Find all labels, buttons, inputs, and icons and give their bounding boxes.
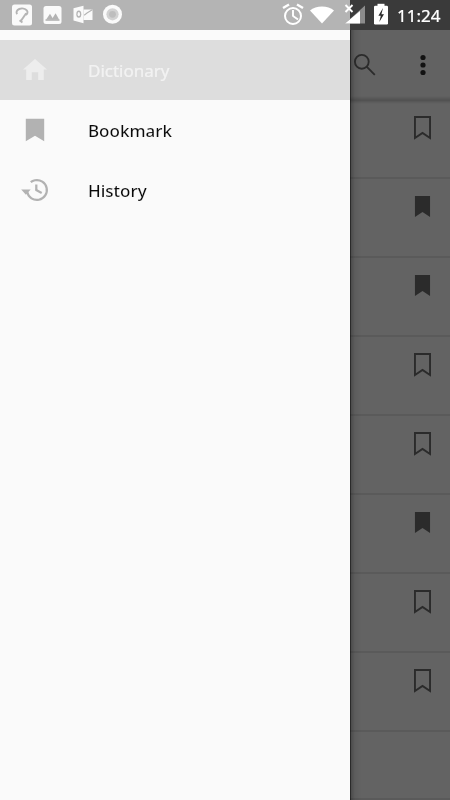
staticText: ability [20, 195, 70, 218]
button[interactable]: More options [399, 41, 447, 89]
button[interactable]: abolish [0, 337, 450, 416]
button[interactable]: absolute [0, 495, 450, 574]
button[interactable]: Bookmark [0, 100, 350, 160]
button[interactable]: ability [0, 179, 450, 258]
button[interactable]: abundant [0, 732, 450, 800]
button[interactable]: History [0, 160, 350, 220]
staticText: 11:24 [397, 4, 441, 27]
staticText: History [88, 179, 147, 202]
button[interactable]: abstract [0, 653, 450, 732]
button[interactable]: abnormal [0, 258, 450, 337]
button[interactable]: abandon [0, 100, 450, 179]
staticText: Bookmark [88, 119, 172, 142]
button[interactable]: abrupt [0, 416, 450, 495]
button[interactable]: Search [341, 41, 389, 89]
button[interactable]: Close navigation drawer [362, 0, 450, 800]
staticText: abandon [20, 116, 93, 139]
staticText: Dictionary [88, 59, 170, 82]
button[interactable]: absorb [0, 574, 450, 653]
